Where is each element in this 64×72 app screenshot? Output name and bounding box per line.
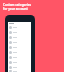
staticText: Custom categories [3,3,32,7]
staticText: for your account [3,7,28,11]
